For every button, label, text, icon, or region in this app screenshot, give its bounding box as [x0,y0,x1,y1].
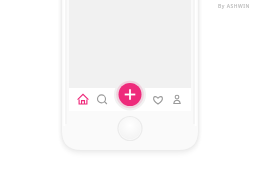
button[interactable]: Search [93,91,111,110]
button[interactable]: Activity [149,91,167,110]
button[interactable]: Home [74,91,92,110]
button[interactable]: Create new post [119,83,142,106]
staticText: By ASHWIN [218,3,250,10]
button[interactable]: Profile [168,91,186,110]
button[interactable]: Home button [118,117,142,141]
